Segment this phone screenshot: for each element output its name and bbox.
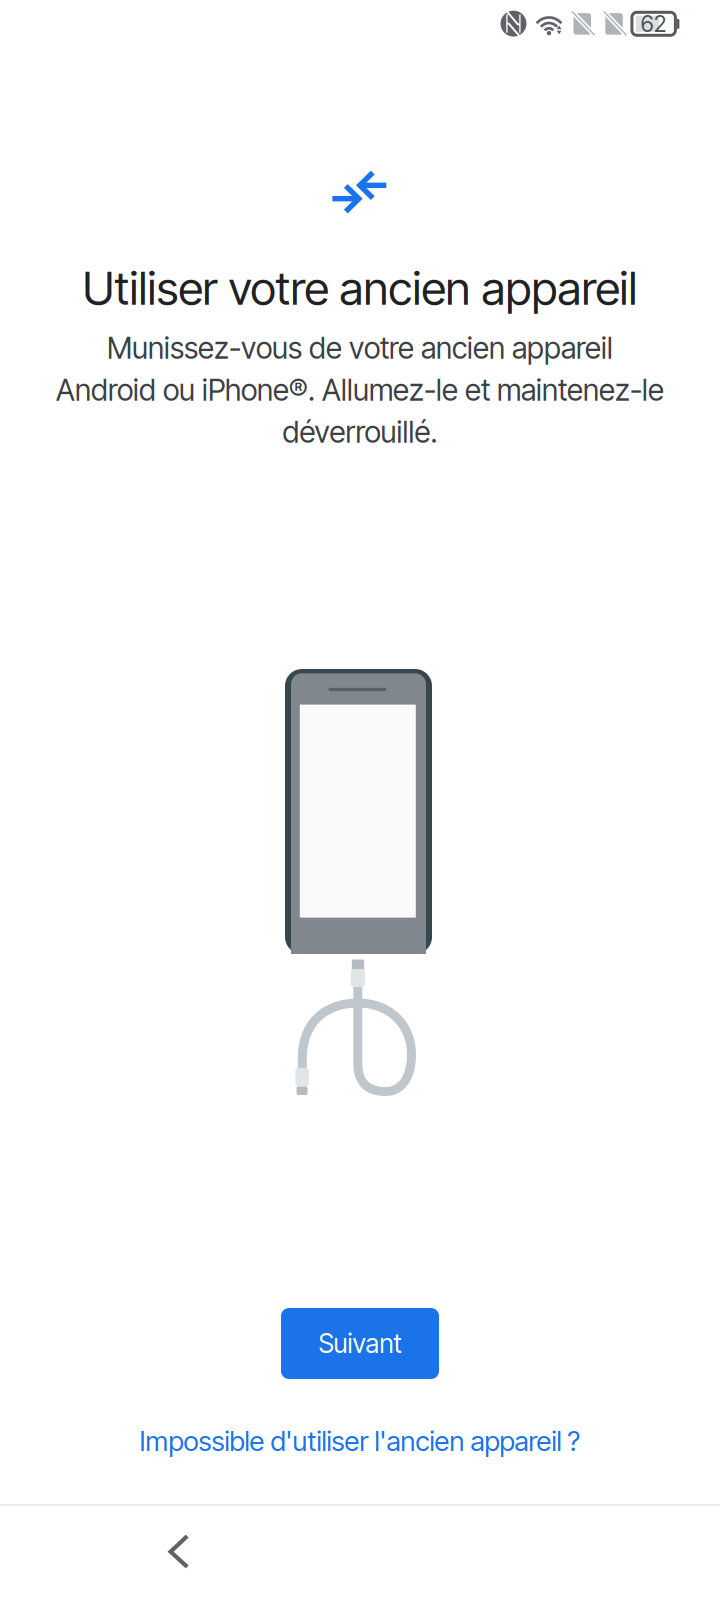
button[interactable]: Back <box>145 1510 214 1593</box>
staticText: Utiliser votre ancien appareil <box>82 260 637 316</box>
staticText: déverrouillé. <box>282 414 437 450</box>
staticText: Suivant <box>318 1328 401 1359</box>
staticText: 62 <box>641 10 667 37</box>
staticText: Munissez-vous de votre ancien appareil <box>107 330 613 366</box>
button[interactable]: Impossible d'utiliser l'ancien appareil … <box>0 1420 720 1462</box>
staticText: Android ou iPhone®. Allumez-le et mainte… <box>56 372 664 408</box>
button[interactable]: Suivant <box>281 1308 439 1379</box>
staticText: Impossible d'utiliser l'ancien appareil … <box>139 1424 580 1458</box>
